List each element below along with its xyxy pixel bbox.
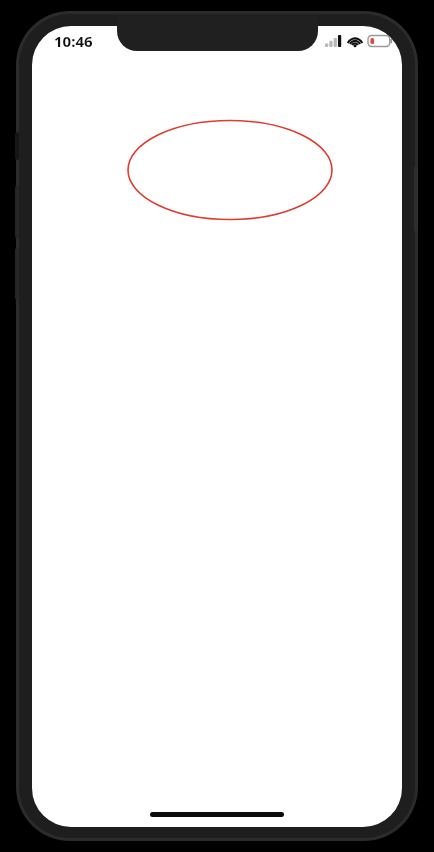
staticText: 10:46 (54, 31, 93, 51)
button[interactable]: Highlighted area (32, 26, 402, 827)
